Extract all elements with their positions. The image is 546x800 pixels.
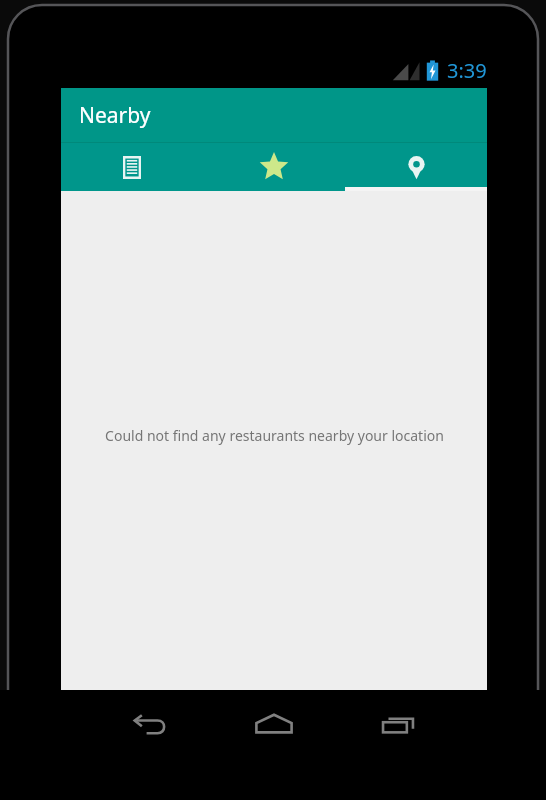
- button[interactable]: List: [61, 143, 203, 191]
- button[interactable]: Map: [345, 143, 487, 191]
- button[interactable]: Home: [239, 704, 309, 744]
- button[interactable]: Back: [115, 704, 185, 744]
- staticText: 3:39: [447, 57, 487, 84]
- staticText: Nearby: [79, 101, 151, 130]
- button[interactable]: Recent apps: [363, 704, 433, 744]
- staticText: Could not find any restaurants nearby yo…: [105, 426, 444, 445]
- button[interactable]: Favorites: [203, 143, 345, 191]
